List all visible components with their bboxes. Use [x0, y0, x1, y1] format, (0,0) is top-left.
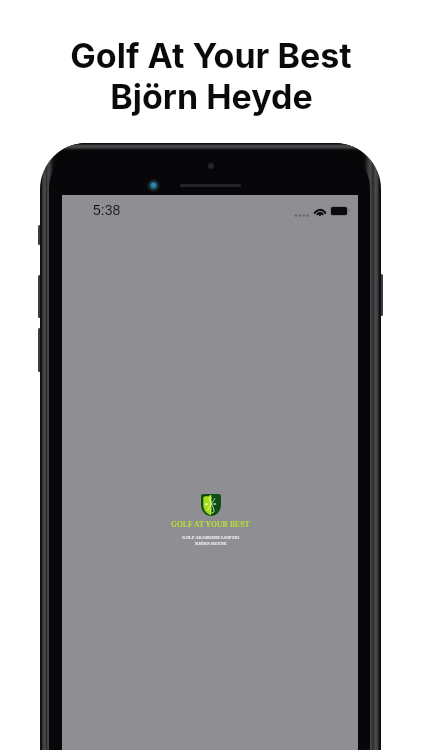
staticText: GOLF AKADEMIE LEIPZIG BJÖRN HEYDE — [182, 535, 240, 546]
staticText: Björn Heyde — [110, 76, 313, 117]
staticText: GOLF AT YOUR BEST — [171, 520, 250, 528]
staticText: 5:38 — [93, 202, 121, 218]
staticText: Golf At Your Best — [70, 35, 352, 76]
